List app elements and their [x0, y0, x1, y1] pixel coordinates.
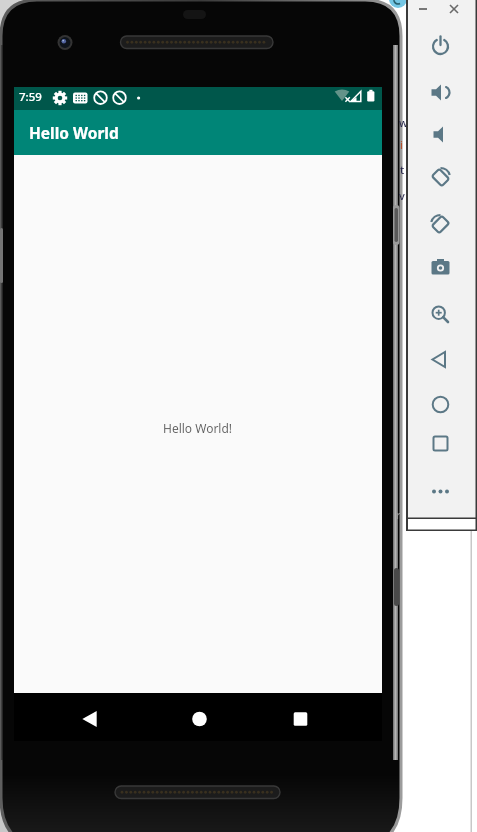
button[interactable]: [273, 697, 328, 741]
button[interactable]: [424, 251, 457, 284]
button[interactable]: [443, 0, 465, 18]
button[interactable]: [412, 0, 434, 18]
staticText: Hello World!: [163, 420, 233, 436]
button[interactable]: [424, 388, 457, 421]
button[interactable]: [424, 298, 457, 331]
staticText: Hello World: [29, 122, 119, 143]
staticText: w: [399, 115, 408, 130]
button[interactable]: [424, 29, 457, 62]
button[interactable]: [424, 161, 457, 194]
button[interactable]: [424, 427, 457, 460]
button[interactable]: [62, 697, 117, 741]
button[interactable]: [424, 343, 457, 376]
staticText: v: [399, 188, 405, 203]
staticText: t: [400, 162, 405, 177]
staticText: r: [396, 507, 401, 522]
button[interactable]: [424, 118, 457, 151]
button[interactable]: [424, 475, 457, 508]
button[interactable]: [424, 208, 457, 241]
button[interactable]: [172, 697, 227, 741]
staticText: 7:59: [19, 89, 42, 105]
staticText: i: [400, 137, 403, 152]
button[interactable]: [424, 76, 457, 109]
